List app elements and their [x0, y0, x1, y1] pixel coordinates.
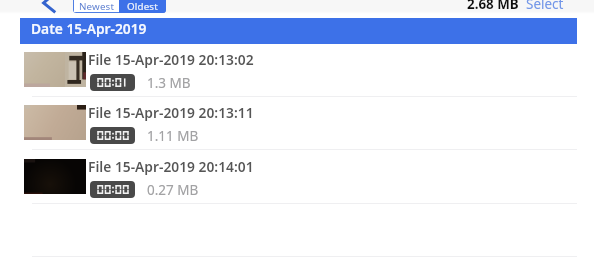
staticText: Oldest	[127, 0, 158, 13]
staticText: File 15-Apr-2019 20:14:01	[88, 157, 254, 176]
button[interactable]: Oldest	[119, 0, 166, 13]
staticText: Date 15-Apr-2019	[31, 19, 147, 38]
button[interactable]: Newest	[74, 0, 119, 12]
staticText: 1.11 MB	[147, 127, 199, 145]
button[interactable]: File 15-Apr-2019 20:14:01	[0, 150, 594, 203]
button[interactable]: Back	[35, 0, 63, 14]
staticText: File 15-Apr-2019 20:13:11	[88, 103, 254, 122]
staticText: 0.27 MB	[147, 181, 199, 199]
staticText: Select	[526, 0, 564, 13]
button[interactable]: Select	[526, 0, 564, 13]
staticText: 1.3 MB	[147, 74, 191, 92]
staticText: Newest	[79, 0, 115, 13]
staticText: File 15-Apr-2019 20:13:02	[88, 50, 254, 69]
button[interactable]: File 15-Apr-2019 20:13:11	[0, 96, 594, 149]
button[interactable]: File 15-Apr-2019 20:13:02	[0, 43, 594, 96]
staticText: 2.68 MB	[467, 0, 519, 13]
